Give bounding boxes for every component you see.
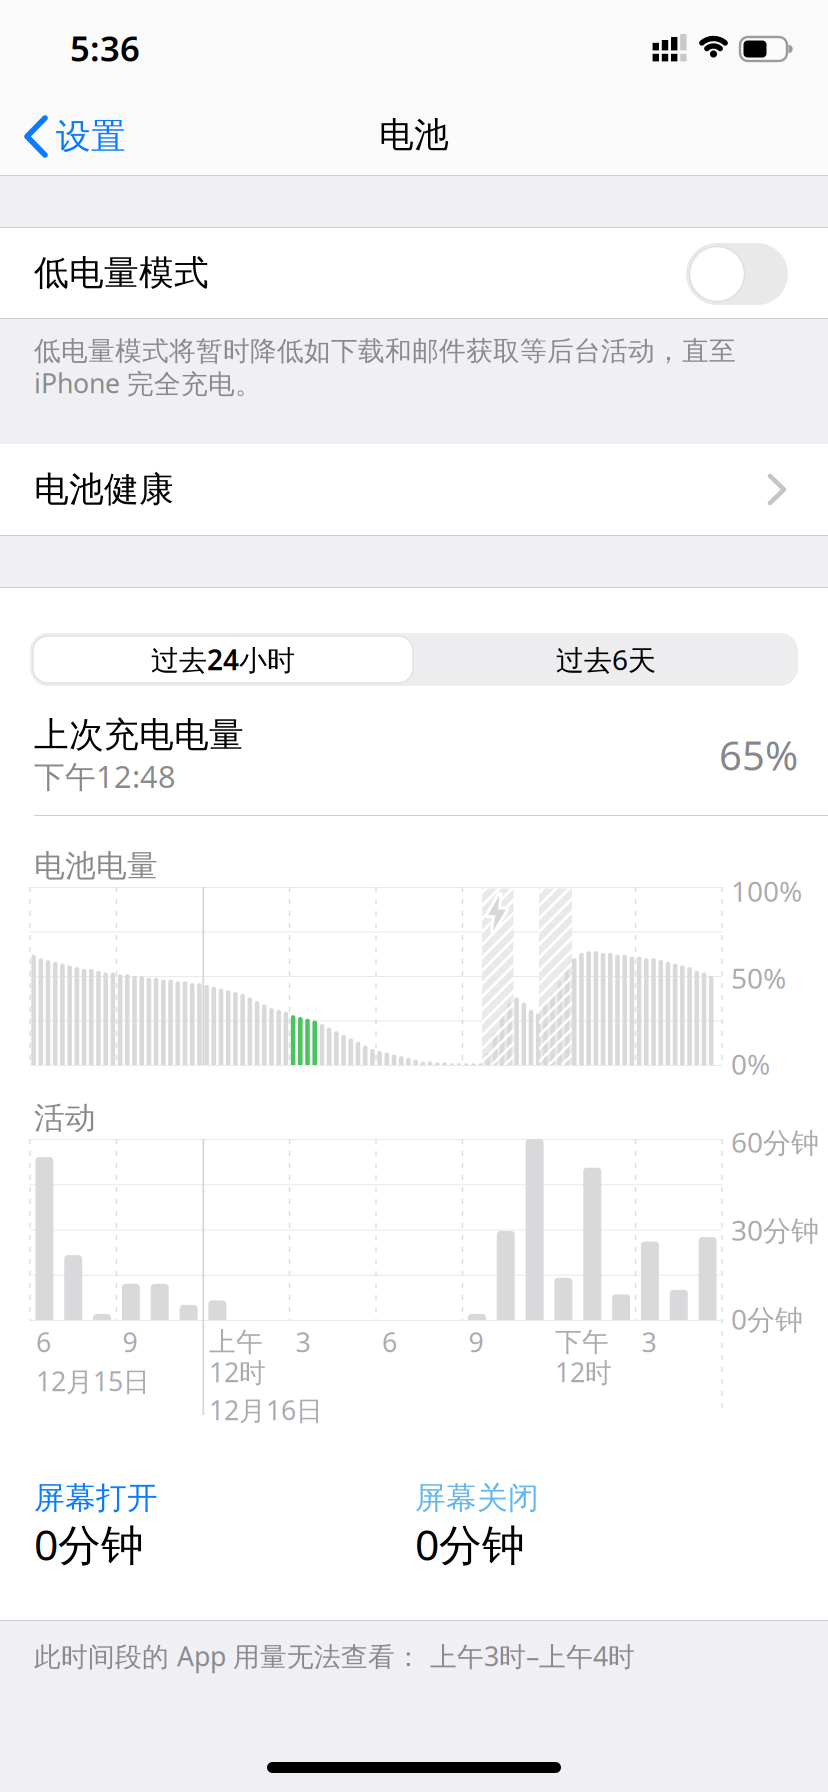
staticText: 50% bbox=[731, 959, 786, 997]
staticText: 低电量模式将暂时降低如下载和邮件获取等后台活动，直至 bbox=[34, 335, 736, 367]
staticText: 过去24小时 bbox=[151, 641, 295, 678]
staticText: 100% bbox=[731, 872, 802, 910]
staticText: 0分钟 bbox=[415, 1516, 525, 1572]
button[interactable]: 过去24小时 bbox=[33, 636, 413, 683]
button[interactable]: 电池健康 bbox=[0, 444, 828, 535]
staticText: 6 bbox=[382, 1324, 397, 1360]
staticText: 设置 bbox=[56, 115, 126, 158]
staticText: 0分钟 bbox=[731, 1300, 803, 1338]
staticText: 低电量模式 bbox=[34, 252, 209, 294]
button[interactable]: 过去6天 bbox=[416, 636, 796, 683]
staticText: 60分钟 bbox=[731, 1123, 819, 1161]
staticText: 9 bbox=[122, 1324, 137, 1360]
button[interactable]: 设置 bbox=[23, 114, 153, 159]
staticText: 12月15日 bbox=[36, 1363, 150, 1399]
staticText: 0% bbox=[731, 1045, 770, 1083]
staticText: iPhone 完全充电。 bbox=[34, 365, 262, 401]
staticText: 上午 bbox=[209, 1326, 263, 1358]
staticText: 屏幕关闭 bbox=[415, 1479, 539, 1517]
staticText: 65% bbox=[719, 728, 798, 781]
staticText: 下午 bbox=[555, 1326, 609, 1358]
staticText: 30分钟 bbox=[731, 1211, 819, 1249]
button[interactable]: 屏幕打开 bbox=[34, 1458, 274, 1550]
staticText: 12时 bbox=[555, 1354, 612, 1390]
staticText: 电池 bbox=[379, 114, 449, 156]
staticText: 电池电量 bbox=[34, 847, 158, 885]
button[interactable]: 低电量模式 bbox=[686, 243, 788, 305]
staticText: 过去6天 bbox=[556, 641, 656, 678]
staticText: 上次充电电量 bbox=[34, 714, 244, 756]
staticText: 12月16日 bbox=[209, 1392, 323, 1428]
staticText: 6 bbox=[36, 1324, 51, 1360]
staticText: 5:36 bbox=[70, 25, 140, 71]
button[interactable]: 屏幕关闭 bbox=[415, 1458, 655, 1550]
staticText: 3 bbox=[641, 1324, 656, 1360]
staticText: 活动 bbox=[34, 1099, 96, 1137]
staticText: 下午12:48 bbox=[34, 756, 176, 796]
staticText: 屏幕打开 bbox=[34, 1479, 158, 1517]
staticText: 此时间段的 App 用量无法查看： 上午3时–上午4时 bbox=[34, 1638, 635, 1674]
staticText: 3 bbox=[295, 1324, 310, 1360]
staticText: 电池健康 bbox=[34, 468, 174, 511]
staticText: 12时 bbox=[209, 1354, 266, 1390]
staticText: 0分钟 bbox=[34, 1516, 144, 1572]
staticText: 9 bbox=[468, 1324, 483, 1360]
